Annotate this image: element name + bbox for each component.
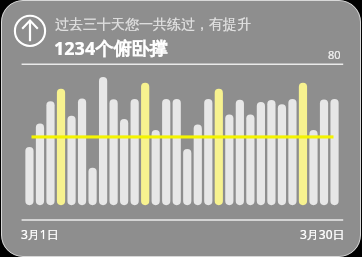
staticText: 80 [328,47,341,62]
button[interactable]: 过去三十天您一共练过，有提升 [1,0,361,257]
staticText: 过去三十天您一共练过，有提升 [55,16,251,34]
staticText: 1234个俯卧撑 [54,36,168,61]
staticText: 3月30日 [300,226,345,242]
staticText: 3月1日 [21,226,59,242]
